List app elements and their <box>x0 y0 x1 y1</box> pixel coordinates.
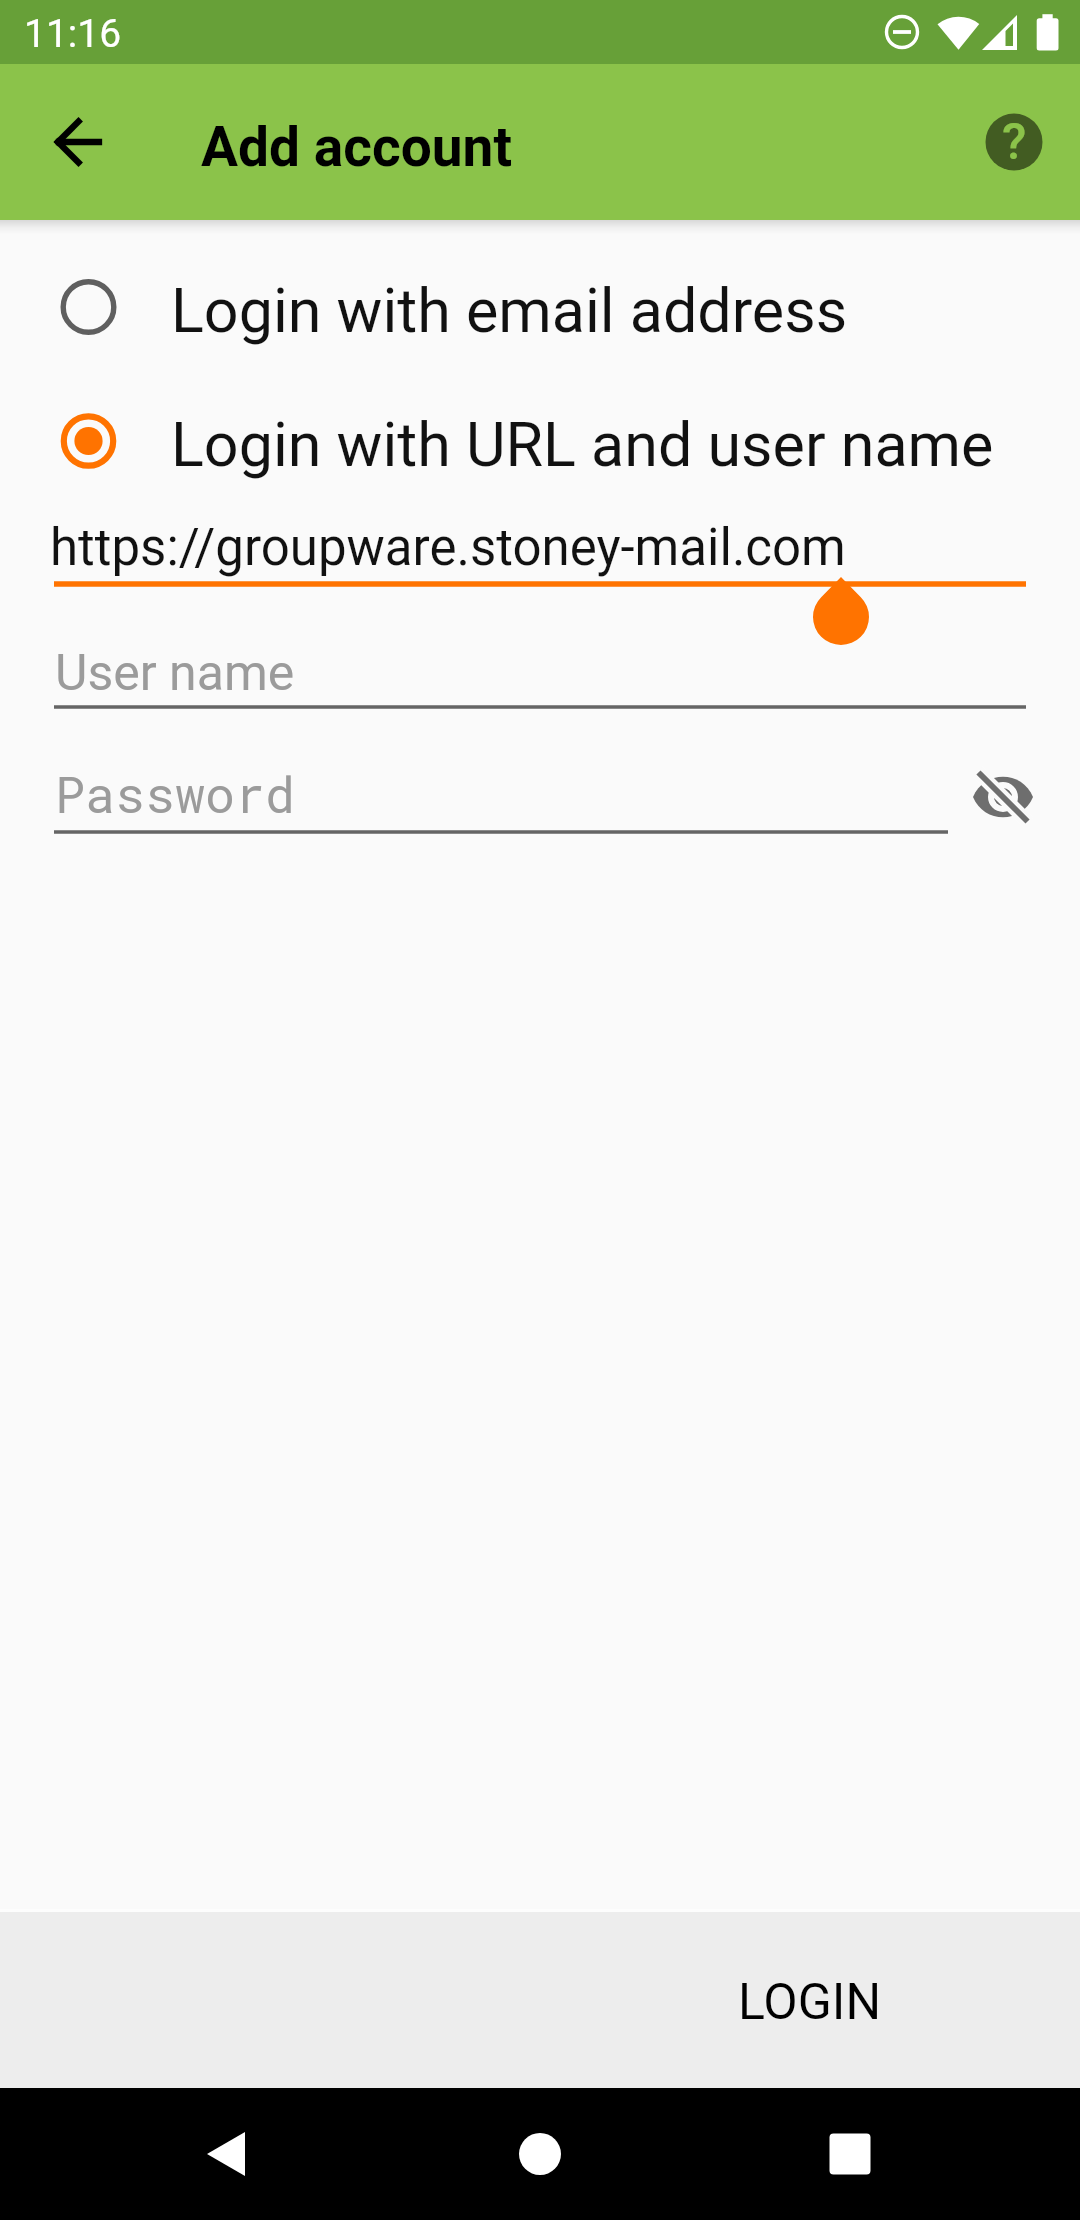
button[interactable]: Login with URL and user name <box>0 388 1080 494</box>
button[interactable]: Home <box>450 2088 630 2220</box>
staticText: Password <box>55 761 296 827</box>
staticText: ? <box>1002 113 1027 172</box>
button[interactable]: Show password <box>963 757 1043 837</box>
staticText: Login with email address <box>171 275 848 346</box>
staticText: https://groupware.stoney-mail.com <box>50 518 846 578</box>
button[interactable]: Password <box>0 744 1080 844</box>
button[interactable]: Help <box>972 100 1056 184</box>
button[interactable]: User name <box>0 619 1080 719</box>
staticText: User name <box>55 644 295 703</box>
button[interactable]: https://groupware.stoney-mail.com <box>0 500 1080 590</box>
button[interactable]: Navigate up <box>35 100 119 184</box>
button[interactable]: LOGIN <box>706 1949 914 2056</box>
button[interactable]: Login with email address <box>0 254 1080 360</box>
button[interactable]: Recent apps <box>760 2088 940 2220</box>
button[interactable]: Back <box>136 2088 316 2220</box>
staticText: LOGIN <box>738 1973 882 2032</box>
staticText: Login with URL and user name <box>171 409 994 480</box>
staticText: 11:16 <box>24 11 122 57</box>
staticText: Add account <box>201 115 512 179</box>
